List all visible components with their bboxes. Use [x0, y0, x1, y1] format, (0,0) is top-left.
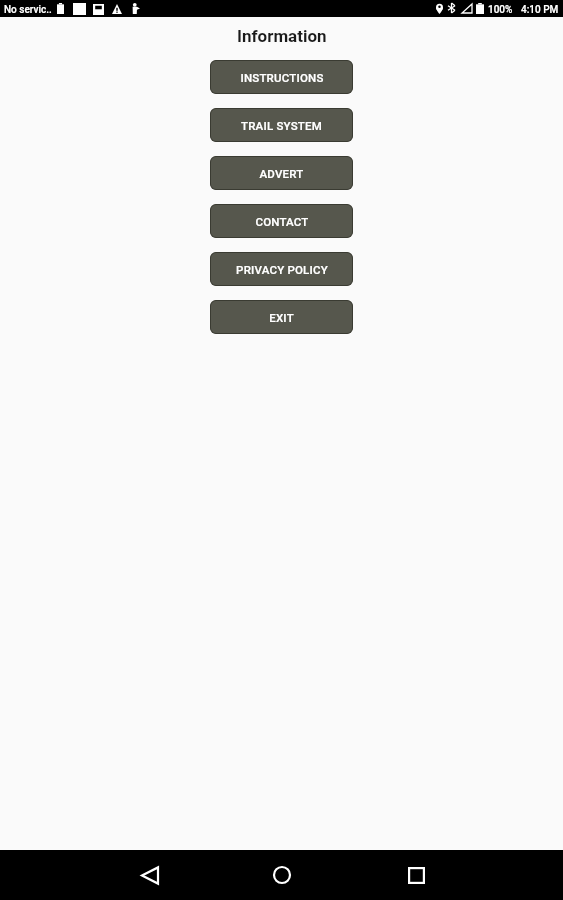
button[interactable]: CONTACT [210, 204, 353, 238]
staticText: Information [237, 26, 327, 46]
button[interactable]: PRIVACY POLICY [210, 252, 353, 286]
button[interactable]: Home [248, 850, 316, 900]
staticText: INSTRUCTIONS [240, 71, 324, 84]
staticText: No servic.. [4, 4, 52, 16]
button[interactable]: Back [116, 850, 184, 900]
staticText: PRIVACY POLICY [236, 263, 328, 276]
staticText: ADVERT [259, 167, 304, 180]
button[interactable]: TRAIL SYSTEM [210, 108, 353, 142]
button[interactable]: INSTRUCTIONS [210, 60, 353, 94]
staticText: 100% [488, 4, 513, 16]
button[interactable]: ADVERT [210, 156, 353, 190]
staticText: EXIT [269, 311, 294, 324]
staticText: 4:10 PM [521, 4, 559, 16]
staticText: CONTACT [255, 215, 309, 228]
button[interactable]: Recents [382, 850, 450, 900]
staticText: TRAIL SYSTEM [241, 119, 322, 132]
button[interactable]: EXIT [210, 300, 353, 334]
